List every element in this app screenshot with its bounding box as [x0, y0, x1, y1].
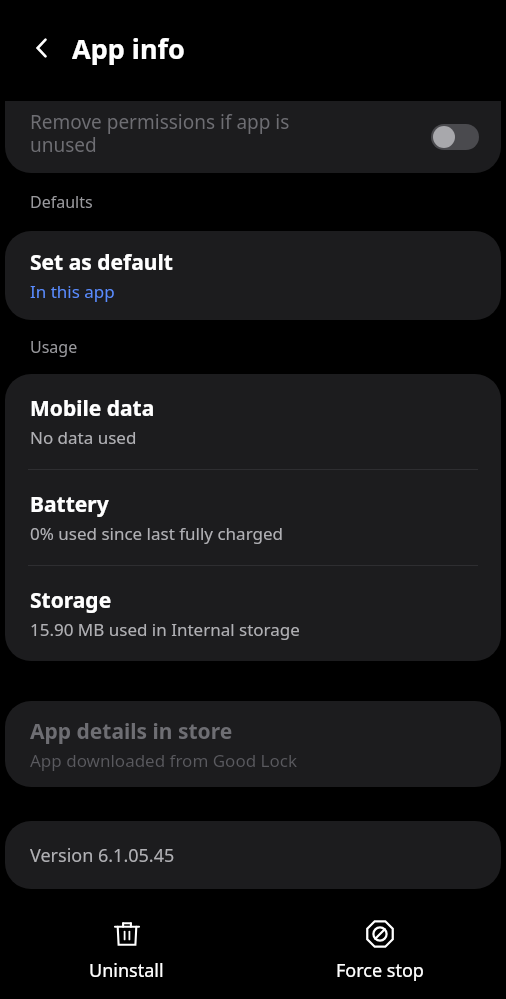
- button[interactable]: Force stop: [253, 903, 506, 999]
- staticText: 15.90 MB used in Internal storage: [30, 618, 300, 641]
- button[interactable]: Remove permissions if app is unused: [5, 101, 501, 173]
- staticText: In this app: [30, 280, 115, 303]
- button[interactable]: Uninstall: [0, 903, 253, 999]
- button[interactable]: Mobile data: [5, 374, 501, 469]
- staticText: Uninstall: [89, 958, 164, 983]
- staticText: No data used: [30, 426, 137, 449]
- staticText: Storage: [30, 586, 112, 615]
- staticText: App details in store: [30, 717, 233, 746]
- button[interactable]: Set as default: [5, 231, 501, 320]
- staticText: Remove permissions if app is unused: [30, 109, 290, 158]
- button[interactable]: App details in store: [5, 701, 501, 787]
- button[interactable]: Battery: [5, 470, 501, 565]
- staticText: Mobile data: [30, 394, 155, 423]
- staticText: Defaults: [30, 191, 93, 213]
- button[interactable]: Back: [20, 26, 64, 70]
- staticText: Version 6.1.05.45: [30, 843, 175, 868]
- button[interactable]: Storage: [5, 566, 501, 661]
- staticText: Battery: [30, 490, 109, 519]
- staticText: App info: [72, 30, 185, 67]
- staticText: Usage: [30, 336, 78, 358]
- staticText: 0% used since last fully charged: [30, 522, 283, 545]
- button[interactable]: Version 6.1.05.45: [5, 821, 501, 889]
- staticText: Set as default: [30, 248, 173, 277]
- staticText: Force stop: [336, 958, 424, 983]
- staticText: App downloaded from Good Lock: [30, 749, 297, 772]
